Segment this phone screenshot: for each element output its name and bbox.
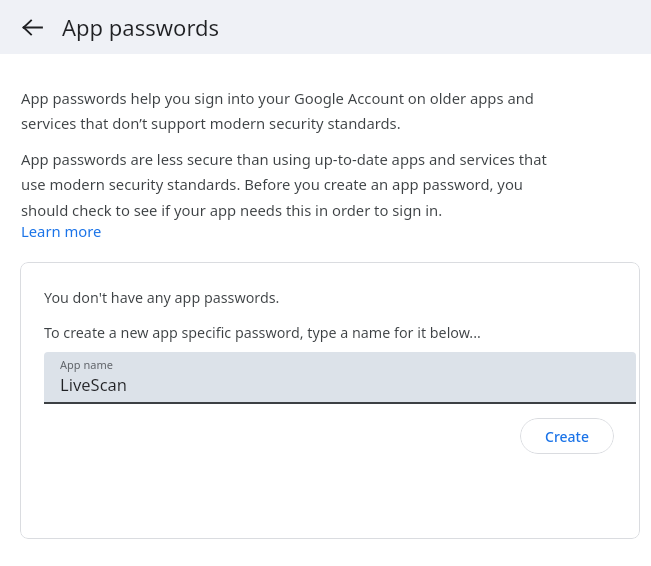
staticText: To create a new app specific password, t… bbox=[44, 323, 481, 342]
button[interactable]: Back bbox=[14, 9, 50, 45]
staticText: Create bbox=[545, 427, 589, 446]
button[interactable]: Create bbox=[520, 418, 614, 454]
button[interactable]: Learn more bbox=[21, 221, 102, 241]
button[interactable]: App name bbox=[44, 352, 636, 404]
staticText: App passwords help you sign into your Go… bbox=[21, 88, 566, 134]
staticText: App passwords are less secure than using… bbox=[21, 149, 561, 221]
staticText: You don't have any app passwords. bbox=[44, 288, 280, 307]
staticText: LiveScan bbox=[60, 373, 128, 395]
staticText: App passwords bbox=[62, 12, 220, 42]
staticText: App name bbox=[60, 357, 113, 372]
staticText: Learn more bbox=[21, 221, 102, 241]
